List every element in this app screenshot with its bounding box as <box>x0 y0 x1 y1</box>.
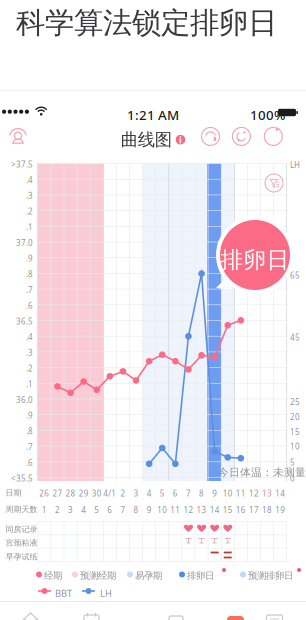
staticText: 12 <box>183 504 193 515</box>
staticText: .1 <box>26 379 33 389</box>
staticText: 日期 <box>5 488 21 498</box>
staticText: LH <box>100 587 112 599</box>
button[interactable]: Home <box>0 608 61 620</box>
button[interactable]: Sync <box>230 125 252 147</box>
staticText: 3 <box>68 504 73 515</box>
staticText: .9 <box>26 410 33 421</box>
staticText: 36.5 <box>16 316 33 327</box>
staticText: 14 <box>275 488 285 499</box>
staticText: <35.5 <box>11 473 33 484</box>
staticText: 10 <box>290 441 300 452</box>
staticText: 15 <box>223 504 233 515</box>
staticText: 1:21 AM <box>127 106 179 124</box>
staticText: 10 <box>223 488 233 499</box>
staticText: .6 <box>26 300 33 311</box>
staticText: 1 <box>42 504 47 515</box>
staticText: 周期天数 <box>5 504 37 514</box>
staticText: 14 <box>210 504 220 515</box>
staticText: 8 <box>199 488 204 499</box>
button[interactable]: Chart <box>183 608 244 620</box>
staticText: 7 <box>186 488 191 499</box>
button[interactable]: Filter <box>265 174 283 192</box>
staticText: 预测经期 <box>80 570 116 581</box>
staticText: 预测排卵日 <box>248 570 293 581</box>
staticText: 100% <box>250 106 285 124</box>
staticText: 曲线图 <box>121 129 172 150</box>
staticText: .4 <box>26 332 33 342</box>
staticText: 13 <box>262 488 272 499</box>
staticText: 17 <box>249 504 259 515</box>
staticText: 8 <box>134 504 139 515</box>
staticText: 18 <box>262 504 272 515</box>
staticText: 15 <box>290 426 300 437</box>
staticText: 排卵日 <box>187 570 214 581</box>
button[interactable]: Refresh <box>262 125 284 147</box>
staticText: 5 <box>290 457 295 468</box>
staticText: .2 <box>26 363 33 374</box>
staticText: 3 <box>134 488 139 499</box>
staticText: 同房记录 <box>5 524 37 534</box>
staticText: 9 <box>212 488 217 499</box>
staticText: 4 <box>81 504 86 515</box>
staticText: .9 <box>26 253 33 264</box>
staticText: .8 <box>26 426 33 436</box>
staticText: 26 <box>39 488 49 499</box>
button[interactable]: Profile <box>3 121 33 151</box>
staticText: 13 <box>197 504 207 515</box>
staticText: 2 <box>55 504 60 515</box>
staticText: 20 <box>290 411 300 422</box>
staticText: .3 <box>26 190 33 201</box>
staticText: 16 <box>236 504 246 515</box>
staticText: LH <box>290 159 300 170</box>
staticText: 经期 <box>44 570 62 581</box>
staticText: .2 <box>26 206 33 217</box>
staticText: 10 <box>157 504 167 515</box>
button[interactable]: Records <box>122 608 183 620</box>
staticText: 0 <box>290 473 295 484</box>
staticText: 30 <box>92 488 102 499</box>
staticText: .4 <box>26 175 33 185</box>
button[interactable]: More <box>244 608 305 620</box>
staticText: 排卵日 <box>220 246 289 274</box>
staticText: .1 <box>26 222 33 232</box>
staticText: 19 <box>275 504 285 515</box>
staticText: BBT <box>55 587 72 599</box>
staticText: i <box>179 133 182 146</box>
staticText: 45 <box>290 332 300 343</box>
staticText: 2 <box>120 488 125 499</box>
staticText: 11 <box>236 488 246 499</box>
staticText: 4/1 <box>103 488 116 499</box>
staticText: 9 <box>147 504 152 515</box>
staticText: 早孕试纸 <box>5 552 37 562</box>
staticText: .8 <box>26 269 33 279</box>
staticText: 27 <box>52 488 62 499</box>
button[interactable]: Calendar <box>61 608 122 620</box>
staticText: 36.0 <box>16 394 33 405</box>
staticText: 易孕期 <box>135 570 162 581</box>
staticText: 5 <box>94 504 99 515</box>
staticText: 65 <box>290 270 300 281</box>
staticText: 29 <box>79 488 89 499</box>
staticText: 6 <box>107 504 112 515</box>
staticText: 28 <box>65 488 75 499</box>
staticText: 今日体温：未测量 <box>218 466 306 479</box>
staticText: .6 <box>26 457 33 468</box>
staticText: 12 <box>249 488 259 499</box>
staticText: 6 <box>173 488 178 499</box>
staticText: 5 <box>160 488 165 499</box>
staticText: 37.0 <box>16 237 33 248</box>
staticText: .7 <box>26 442 33 452</box>
staticText: .3 <box>26 347 33 358</box>
staticText: 宫颈粘液 <box>5 538 37 548</box>
staticText: 4 <box>147 488 152 499</box>
staticText: 7 <box>120 504 125 515</box>
staticText: 25 <box>290 396 300 407</box>
staticText: >37.5 <box>11 159 33 170</box>
staticText: 科学算法锁定排卵日 <box>16 5 277 41</box>
staticText: .7 <box>26 285 33 295</box>
button[interactable]: Support <box>199 125 221 147</box>
staticText: 11 <box>170 504 180 515</box>
